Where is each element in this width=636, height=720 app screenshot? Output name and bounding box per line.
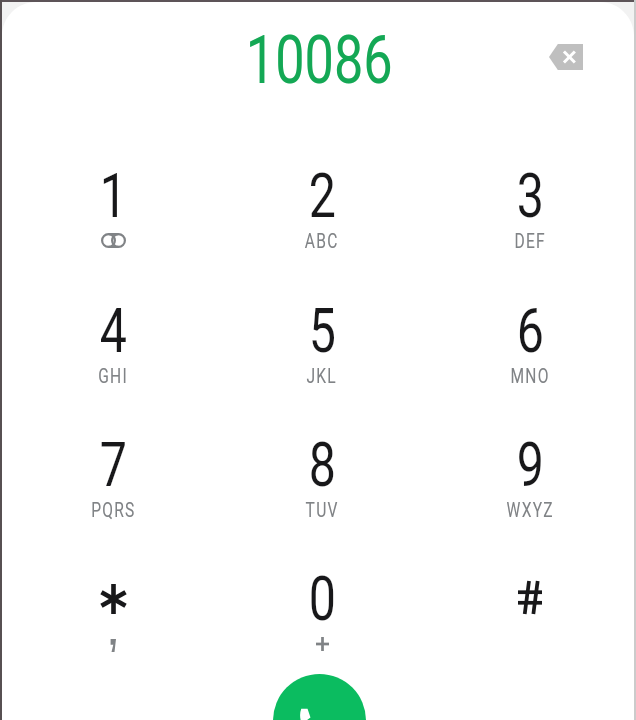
staticText: ABC [305,229,339,252]
staticText: 8 [309,428,336,501]
button[interactable]: 7 [13,416,213,540]
button[interactable] [13,550,213,674]
staticText: 9 [517,428,544,501]
staticText: 3 [517,159,544,232]
button[interactable]: 5 [222,282,422,406]
staticText: MNO [510,364,550,387]
button[interactable]: Call [273,674,366,720]
staticText: TUV [306,498,339,521]
staticText: GHI [98,364,129,387]
button[interactable]: 9 [430,416,630,540]
button[interactable]: 1 [13,147,213,271]
button[interactable]: 3 [430,147,630,271]
button[interactable]: 8 [222,416,422,540]
staticText: DEF [514,229,546,252]
staticText: 2 [309,159,336,232]
staticText: 10086 [246,21,393,91]
staticText: 1 [100,159,127,232]
staticText: 4 [100,294,127,367]
staticText: PQRS [91,498,136,521]
button[interactable]: 6 [430,282,630,406]
staticText: 6 [517,294,544,367]
button[interactable]: 4 [13,282,213,406]
button[interactable]: 2 [222,147,422,271]
staticText: JKL [306,364,338,387]
button[interactable]: Backspace [534,25,598,89]
staticText: 5 [309,294,336,367]
button[interactable] [430,550,630,674]
button[interactable]: 0 [222,550,422,674]
staticText: 0 [309,562,336,635]
staticText: WXYZ [507,498,554,521]
staticText: 7 [100,428,127,501]
